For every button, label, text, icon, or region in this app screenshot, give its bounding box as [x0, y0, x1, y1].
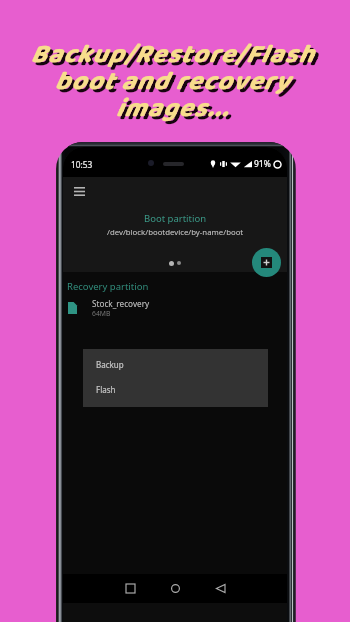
button[interactable]: Recent apps: [119, 577, 141, 599]
staticText: images...: [0, 91, 350, 136]
staticText: 10:53: [71, 159, 93, 170]
staticText: boot and recovery: [0, 64, 350, 109]
staticText: /dev/block/bootdevice/by-name/boot: [107, 227, 244, 238]
staticText: Boot partition: [144, 212, 207, 225]
button[interactable]: Back: [209, 577, 231, 599]
staticText: Backup: [96, 359, 124, 370]
staticText: images...: [0, 88, 347, 133]
button[interactable]: Open navigation menu: [68, 180, 90, 202]
staticText: Backup/Restore/Flash: [0, 34, 347, 79]
button[interactable]: Backup: [83, 352, 268, 377]
button[interactable]: Flash: [83, 377, 268, 402]
staticText: Backup/Restore/Flash: [0, 37, 350, 82]
staticText: Flash: [96, 384, 116, 395]
staticText: 91%: [254, 158, 271, 170]
staticText: boot and recovery: [0, 61, 347, 106]
staticText: Recovery partition: [67, 280, 149, 293]
button[interactable]: Stock_recovery: [63, 296, 287, 320]
staticText: 64MB: [92, 309, 111, 318]
button[interactable]: Create backup: [252, 248, 281, 277]
staticText: Stock_recovery: [92, 298, 150, 309]
button[interactable]: Home: [164, 577, 186, 599]
